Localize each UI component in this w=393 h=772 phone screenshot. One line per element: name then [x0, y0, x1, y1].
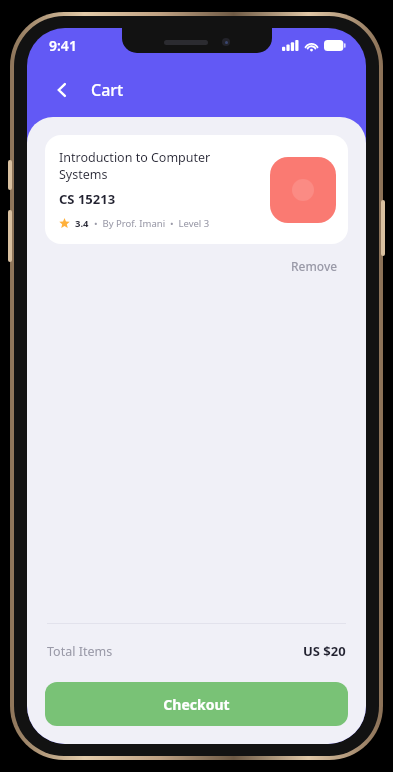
- staticText: Checkout: [163, 695, 230, 714]
- staticText: • By Prof. Imani • Level 3: [94, 217, 210, 230]
- staticText: 9:41: [49, 36, 77, 55]
- staticText: Total Items: [47, 643, 113, 660]
- button[interactable]: Checkout: [45, 682, 348, 726]
- staticText: Cart: [91, 79, 124, 101]
- staticText: 3.4: [75, 217, 89, 230]
- staticText: Introduction to Computer Systems: [59, 149, 260, 183]
- button[interactable]: Back: [45, 73, 79, 107]
- button[interactable]: Introduction to Computer Systems: [45, 135, 348, 244]
- button[interactable]: Remove: [285, 254, 344, 278]
- staticText: CS 15213: [59, 190, 116, 208]
- staticText: Remove: [291, 258, 338, 274]
- staticText: US $20: [303, 642, 346, 660]
